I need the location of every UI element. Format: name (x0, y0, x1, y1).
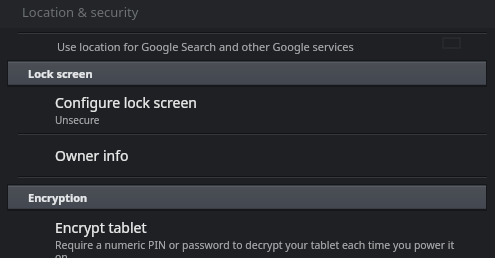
staticText: Location & security (22, 3, 139, 21)
button[interactable]: Encrypt tablet (0, 218, 495, 258)
staticText: Owner info (55, 146, 129, 165)
staticText: Use location for Google Search and other… (57, 39, 354, 54)
button[interactable]: Encryption (7, 184, 487, 211)
staticText: Configure lock screen (55, 93, 197, 112)
staticText: Require a numeric PIN or password to dec… (55, 238, 459, 258)
staticText: Encrypt tablet (55, 218, 147, 237)
staticText: Encryption (28, 190, 88, 205)
other: Use location checkbox (443, 38, 460, 48)
button[interactable]: Configure lock screen (0, 93, 495, 133)
button[interactable]: Use location for Google Search and other… (0, 35, 495, 57)
staticText: Lock screen (28, 66, 93, 81)
staticText: Unsecure (55, 113, 100, 127)
button[interactable]: Owner info (0, 136, 495, 176)
button[interactable]: Lock screen (7, 60, 487, 87)
